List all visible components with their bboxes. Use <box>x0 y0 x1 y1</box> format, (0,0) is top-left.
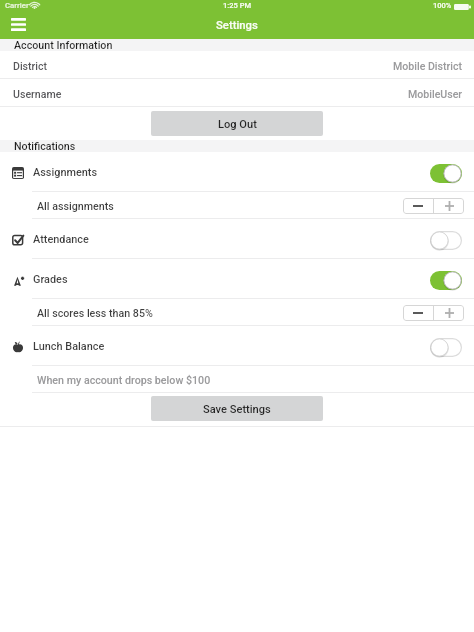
button[interactable]: Decrease <box>403 305 433 321</box>
staticText: Attendance <box>33 233 89 246</box>
staticText: 100% <box>433 1 452 10</box>
staticText: All assignments <box>37 200 114 213</box>
button[interactable]: Assignments notifications <box>430 164 462 183</box>
button[interactable]: Grades <box>0 259 474 298</box>
staticText: Lunch Balance <box>33 340 105 353</box>
button[interactable]: When my account drops below $100 <box>0 366 474 392</box>
staticText: Log Out <box>218 118 257 131</box>
button[interactable]: Attendance notifications <box>430 231 462 250</box>
staticText: Grades <box>33 273 68 286</box>
staticText: District <box>13 60 48 72</box>
button[interactable]: Attendance <box>0 219 474 258</box>
staticText: Save Settings <box>203 403 271 416</box>
button[interactable]: All assignments <box>0 192 474 218</box>
button[interactable]: Open navigation menu <box>6 14 31 35</box>
staticText: Settings <box>216 19 258 32</box>
button[interactable]: Log Out <box>151 111 323 136</box>
staticText: Mobile District <box>393 60 463 72</box>
staticText: MobileUser <box>408 88 463 100</box>
staticText: 1:25 PM <box>223 1 251 10</box>
button[interactable]: Increase <box>434 198 464 214</box>
button[interactable]: District <box>0 51 474 78</box>
staticText: Carrier <box>5 1 29 10</box>
staticText: Notifications <box>14 140 76 150</box>
staticText: Username <box>13 88 62 100</box>
staticText: Assignments <box>33 166 98 179</box>
button[interactable]: Save Settings <box>151 396 323 421</box>
button[interactable]: Lunch Balance <box>0 326 474 365</box>
staticText: All scores less than 85% <box>37 307 153 320</box>
button[interactable]: Grades notifications <box>430 271 462 290</box>
button[interactable]: Increase <box>434 305 464 321</box>
button[interactable]: Decrease <box>403 198 433 214</box>
button[interactable]: Lunch Balance notifications <box>430 338 462 357</box>
button[interactable]: Username <box>0 79 474 106</box>
staticText: Account Information <box>14 39 113 49</box>
button[interactable]: Assignments <box>0 152 474 191</box>
staticText: When my account drops below $100 <box>37 374 211 387</box>
button[interactable]: All scores less than 85% <box>0 299 474 325</box>
